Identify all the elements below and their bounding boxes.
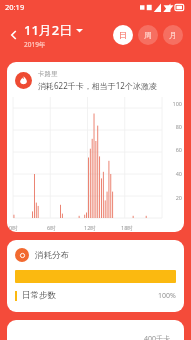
staticText: 100% [158,291,176,301]
staticText: 11月2日 [24,21,73,39]
staticText: 月 [169,30,177,40]
staticText: 20:19 [5,2,25,12]
staticText: 400千卡 [143,334,170,340]
staticText: 12时 [84,224,96,232]
staticText: 周 [144,30,152,40]
staticText: 2019年 [24,40,46,49]
staticText: 100 [164,100,182,107]
staticText: 6时 [47,224,56,232]
staticText: 日 [119,30,127,40]
button[interactable]: 日 [113,25,133,45]
staticText: 卡路里 [38,70,58,78]
staticText: 18时 [121,224,133,232]
button[interactable]: 400千卡 [7,320,184,340]
staticText: 消耗622千卡，相当于12个冰激凌 [38,80,157,91]
staticText: 20 [164,194,182,201]
button[interactable]: Back [6,27,22,43]
button[interactable]: 消耗分布 [7,240,184,312]
button[interactable]: 周 [138,25,158,45]
staticText: 0时 [9,224,18,232]
staticText: 80 [164,123,182,130]
button[interactable]: 11月2日 [24,21,83,49]
staticText: 日常步数 [22,290,56,301]
button[interactable]: 月 [163,25,183,45]
staticText: 60 [164,146,182,153]
staticText: 40 [164,170,182,177]
staticText: 消耗分布 [35,250,69,261]
button[interactable]: 卡路里 [7,62,184,232]
